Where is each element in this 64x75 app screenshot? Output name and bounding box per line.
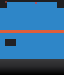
button[interactable]: Menu: [0, 0, 7, 8]
